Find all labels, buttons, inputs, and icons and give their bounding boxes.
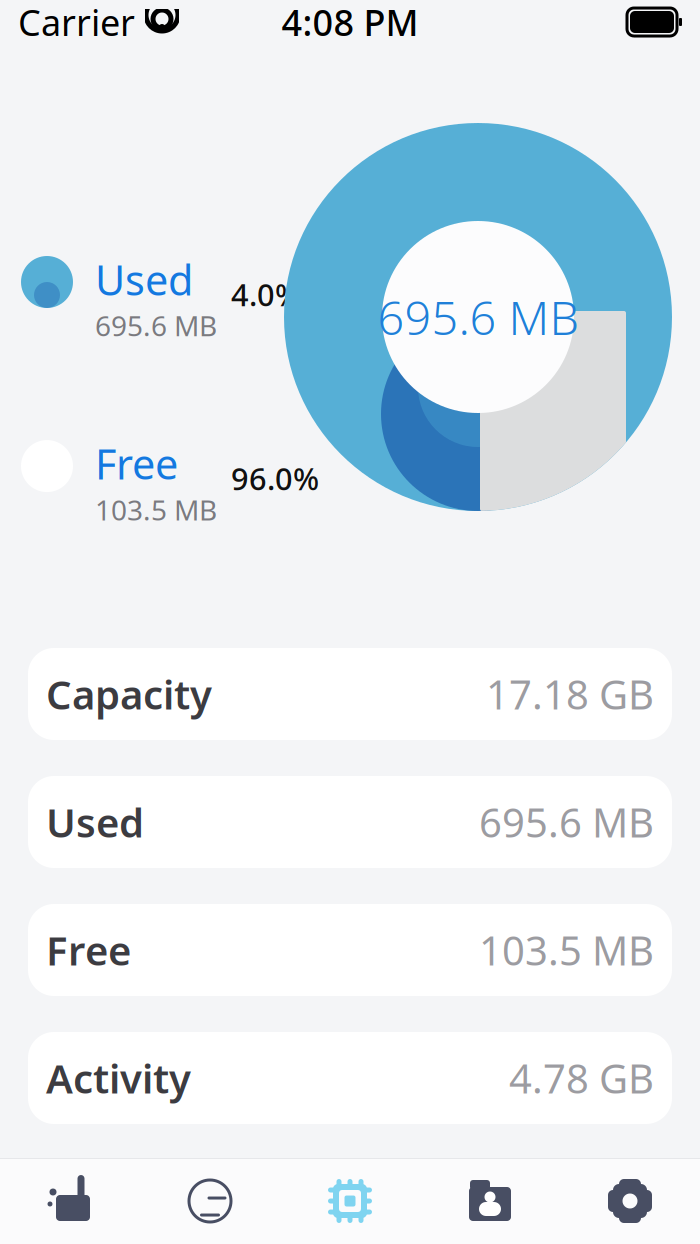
button[interactable]: Files <box>420 1158 560 1244</box>
staticText: 695.6 MB <box>377 286 578 348</box>
staticText: 17.18 GB <box>486 667 654 720</box>
staticText: 103.5 MB <box>95 491 217 528</box>
staticText: Free <box>95 436 178 491</box>
staticText: 695.6 MB <box>95 307 217 344</box>
staticText: 4.0% <box>231 274 301 315</box>
staticText: Capacity <box>46 667 212 720</box>
button[interactable]: Activity <box>28 1032 672 1124</box>
staticText: Used <box>46 795 144 848</box>
staticText: 96.0% <box>231 458 319 499</box>
button[interactable]: Free <box>28 904 672 996</box>
staticText: 103.5 MB <box>479 923 654 976</box>
staticText: 4.78 GB <box>509 1051 654 1104</box>
button[interactable]: Capacity <box>28 648 672 740</box>
staticText: Carrier <box>18 0 135 46</box>
button[interactable]: Speed <box>140 1158 280 1244</box>
button[interactable]: Hardware <box>280 1158 420 1244</box>
staticText: Used <box>95 252 193 307</box>
button[interactable]: Clean <box>0 1158 140 1244</box>
button[interactable]: Used <box>28 776 672 868</box>
staticText: 4:08 PM <box>281 0 418 46</box>
staticText: 695.6 MB <box>479 795 654 848</box>
staticText: Free <box>46 923 131 976</box>
button[interactable]: Settings <box>560 1158 700 1244</box>
staticText: Activity <box>46 1051 191 1104</box>
